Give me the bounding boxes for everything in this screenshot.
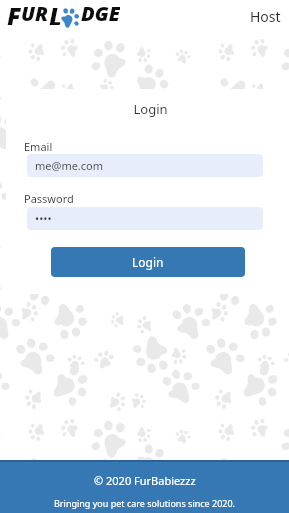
- staticText: ••••: [35, 211, 52, 226]
- staticText: F: [7, 0, 21, 25]
- staticText: © 2020 FurBabiezzz: [94, 473, 196, 488]
- button[interactable]: Host: [242, 1, 289, 32]
- staticText: me@me.com: [35, 158, 104, 173]
- button[interactable]: F: [0, 0, 130, 33]
- staticText: UR: [21, 0, 49, 25]
- button[interactable]: ••••: [27, 207, 263, 230]
- staticText: Login: [6, 100, 289, 118]
- staticText: Login: [132, 254, 164, 270]
- staticText: DGE: [81, 0, 120, 25]
- button[interactable]: Login: [51, 247, 245, 277]
- staticText: Bringing you pet care solutions since 20…: [54, 497, 236, 509]
- staticText: Host: [250, 7, 281, 26]
- staticText: Email: [24, 139, 53, 154]
- button[interactable]: me@me.com: [27, 154, 263, 177]
- staticText: Password: [24, 191, 74, 206]
- staticText: L: [49, 0, 62, 25]
